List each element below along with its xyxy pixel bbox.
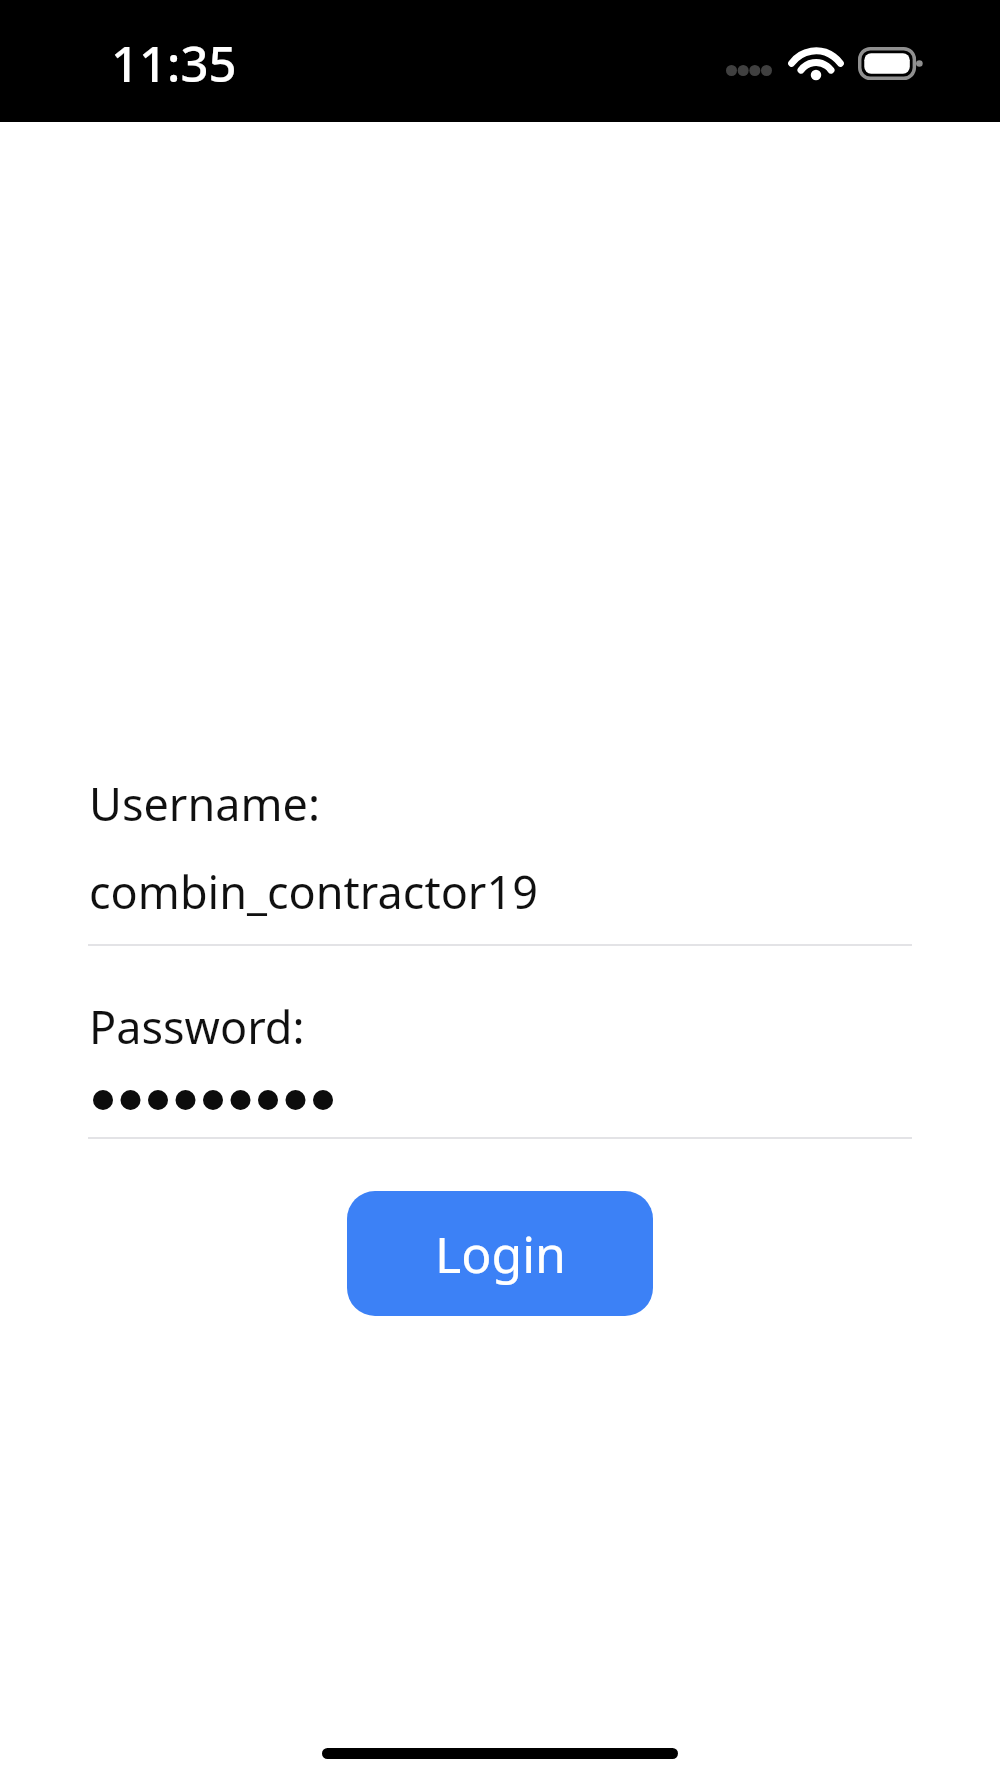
button[interactable]: Login [347,1191,653,1316]
staticText: Password: [89,996,305,1057]
staticText: 11:35 [111,30,237,97]
staticText: combin_contractor19 [89,861,538,922]
other: Home [322,1748,678,1759]
staticText: Username: [89,773,320,834]
button[interactable]: combin_contractor19 [0,861,1000,946]
staticText: Login [435,1220,566,1288]
button[interactable] [0,1089,1000,1139]
